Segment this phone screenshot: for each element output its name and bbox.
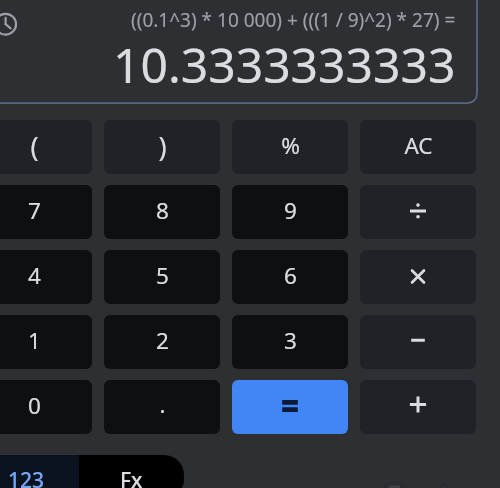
button[interactable]: 2: [104, 315, 220, 369]
staticText: (: [30, 128, 39, 165]
button[interactable]: 5: [104, 250, 220, 304]
button[interactable]: Divide: [360, 185, 476, 239]
button[interactable]: .: [104, 380, 220, 434]
button[interactable]: 1: [0, 315, 92, 369]
staticText: .: [159, 389, 166, 420]
button[interactable]: 8: [104, 185, 220, 239]
staticText: AC: [404, 130, 433, 161]
button[interactable]: Equals: [232, 380, 348, 434]
staticText: Fx: [120, 466, 143, 488]
button[interactable]: 0: [0, 380, 92, 434]
staticText: ((0.1^3) * 10 000) + (((1 / 9)^2) * 27) …: [131, 7, 456, 33]
button[interactable]: ): [104, 120, 220, 174]
staticText: 2: [156, 325, 169, 356]
staticText: 5: [156, 260, 169, 291]
staticText: 0: [28, 390, 41, 421]
staticText: 4: [28, 260, 41, 291]
staticText: %: [281, 130, 300, 161]
staticText: 7: [28, 195, 41, 226]
button[interactable]: AC: [360, 120, 476, 174]
button[interactable]: 4: [0, 250, 92, 304]
staticText: 6: [284, 260, 297, 291]
button[interactable]: (: [0, 120, 92, 174]
staticText: 8: [156, 195, 169, 226]
button[interactable]: Multiply: [360, 250, 476, 304]
button[interactable]: %: [232, 120, 348, 174]
button[interactable]: Plus: [360, 380, 476, 434]
button[interactable]: 7: [0, 185, 92, 239]
button[interactable]: 123: [0, 455, 79, 488]
staticText: ): [158, 128, 167, 165]
button[interactable]: Fx: [79, 455, 184, 488]
staticText: 3: [284, 325, 297, 356]
button[interactable]: Minus: [360, 315, 476, 369]
staticText: 10.3333333333: [113, 32, 456, 97]
staticText: 123: [8, 466, 45, 488]
staticText: 1: [28, 325, 41, 356]
button[interactable]: 3: [232, 315, 348, 369]
button[interactable]: 6: [232, 250, 348, 304]
button[interactable]: 9: [232, 185, 348, 239]
staticText: 9: [284, 195, 297, 226]
button[interactable]: History: [0, 6, 24, 42]
